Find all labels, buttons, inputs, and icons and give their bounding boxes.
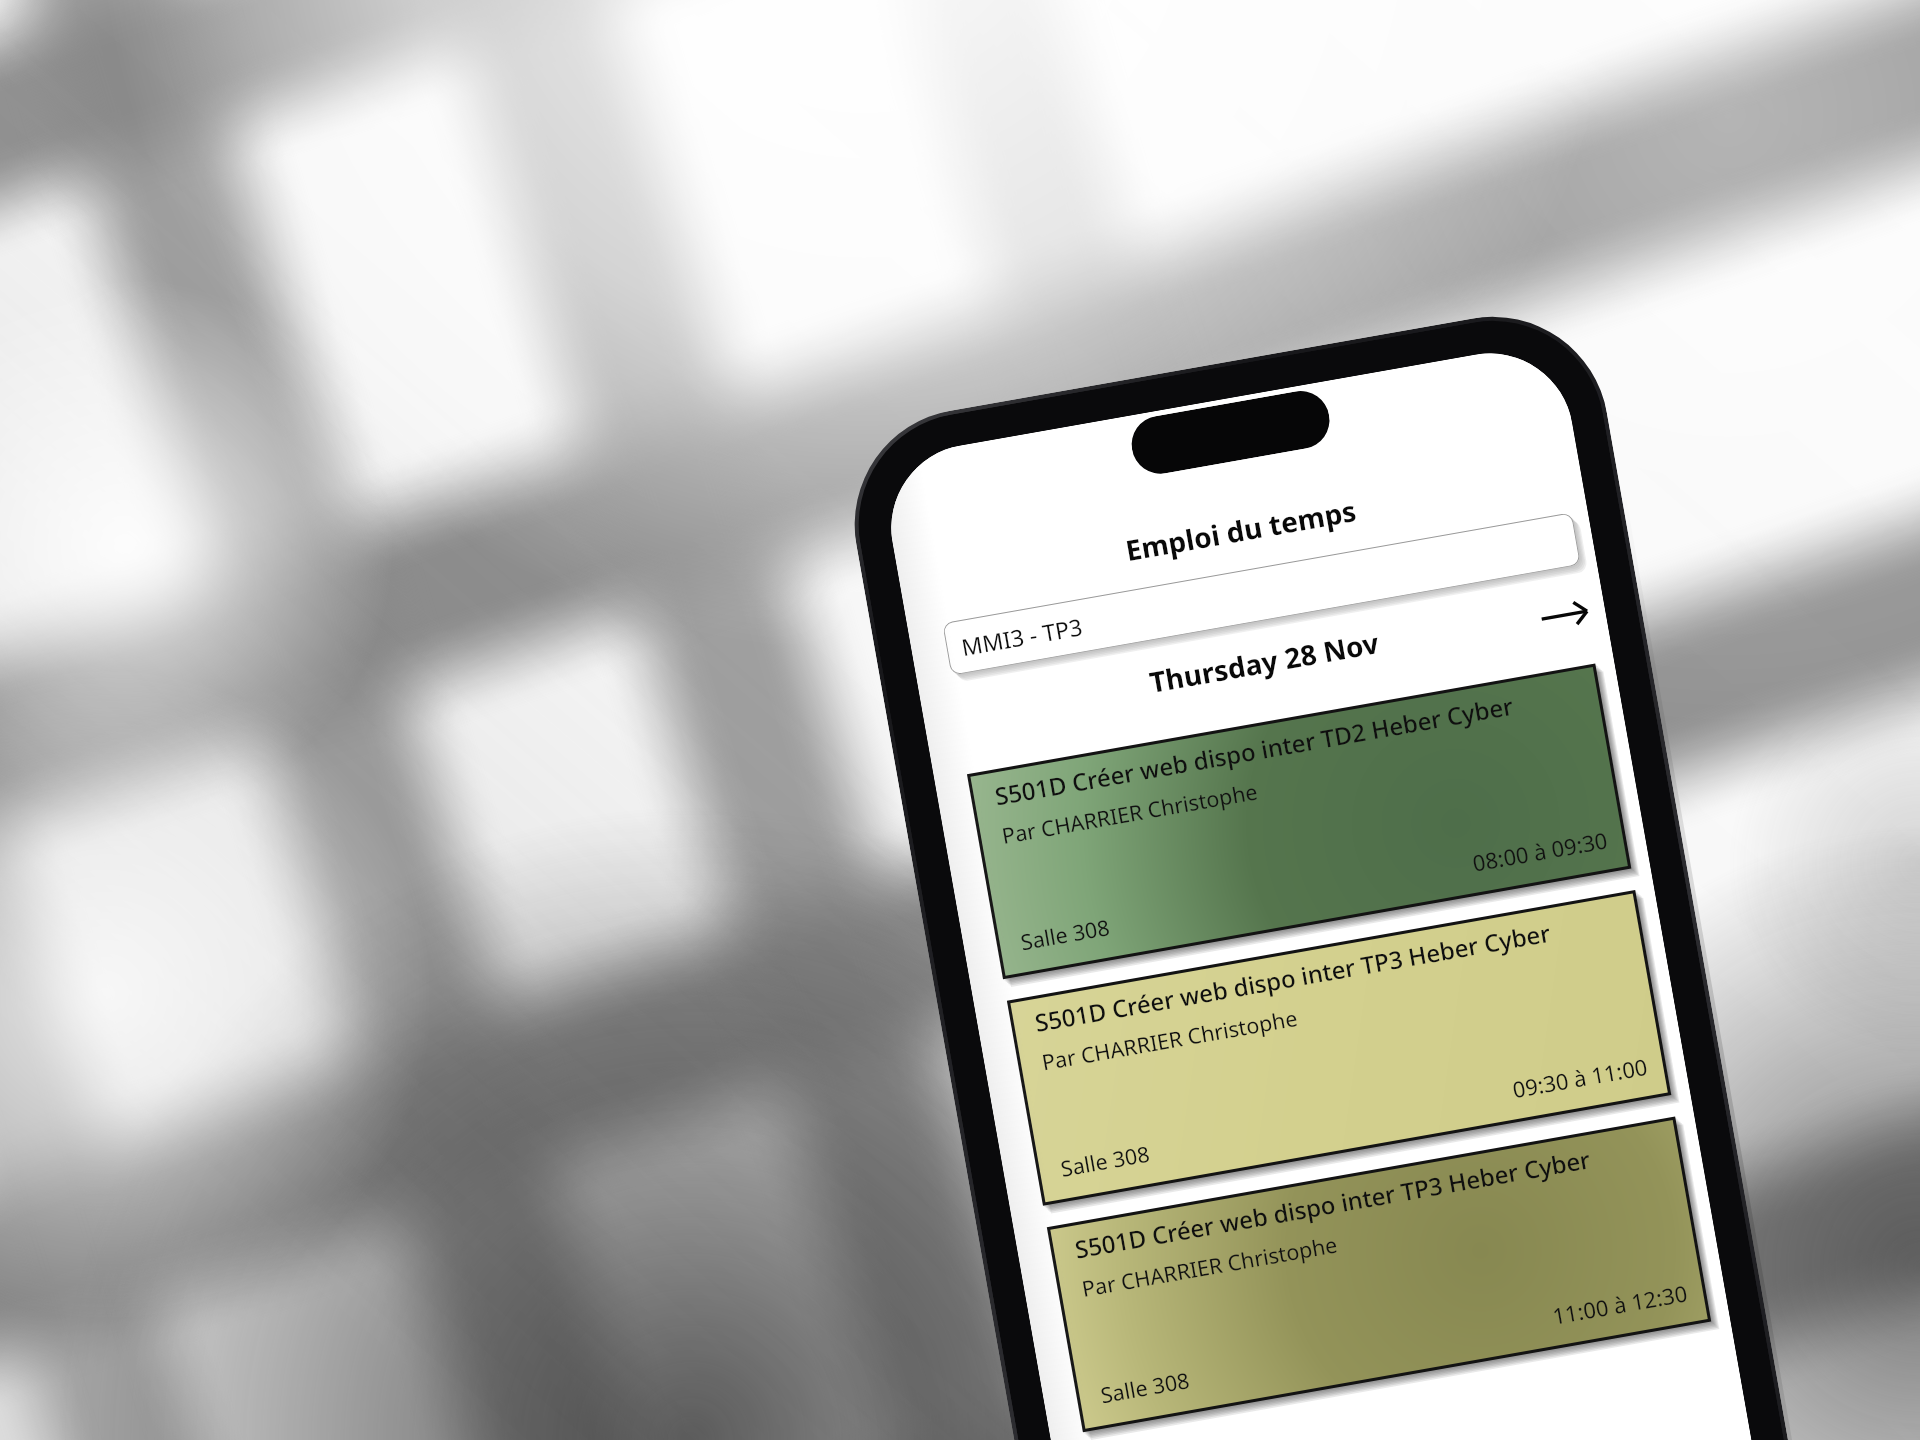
staticText: Par CHARRIER Christophe: [1039, 1003, 1300, 1076]
staticText: Par CHARRIER Christophe: [1000, 776, 1260, 850]
button[interactable]: MMI3 - TP3: [942, 512, 1581, 675]
staticText: Thursday 28 Nov: [921, 583, 1607, 741]
button[interactable]: S501D Créer web dispo inter TP3 Heber Cy…: [1010, 893, 1668, 1202]
staticText: 08:00 à 09:30: [998, 824, 1610, 961]
staticText: Salle 308: [1018, 912, 1112, 956]
staticText: Emploi du temps: [898, 451, 1584, 609]
button[interactable]: S501D Créer web dispo inter TD2 Heber Cy…: [970, 667, 1628, 976]
staticText: Salle 308: [1098, 1365, 1192, 1409]
staticText: S501D Créer web dispo inter TP3 Heber Cy…: [1032, 916, 1553, 1039]
staticText: 11:00 à 12:30: [1078, 1277, 1689, 1414]
staticText: MMI3 - TP3: [959, 610, 1084, 662]
staticText: S501D Créer web dispo inter TD2 Heber Cy…: [992, 689, 1516, 812]
staticText: Salle 308: [1058, 1139, 1152, 1183]
staticText: Par CHARRIER Christophe: [1079, 1229, 1340, 1303]
button[interactable]: Next day: [1526, 579, 1602, 651]
staticText: S501D Créer web dispo inter TP3 Heber Cy…: [1072, 1142, 1593, 1265]
staticText: 09:30 à 11:00: [1038, 1051, 1649, 1187]
button[interactable]: S501D Créer web dispo inter TP3 Heber Cy…: [1050, 1120, 1708, 1429]
